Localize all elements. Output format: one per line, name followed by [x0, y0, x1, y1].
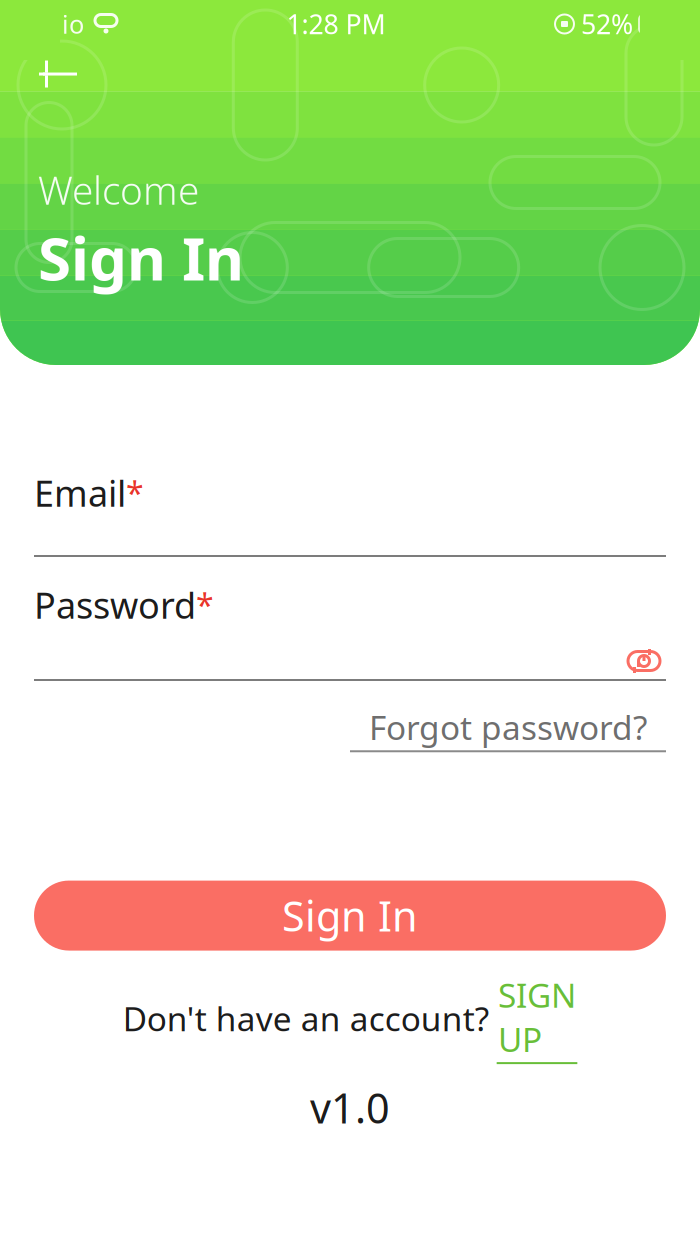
- staticText: *: [196, 584, 214, 626]
- staticText: SIGN UP: [498, 973, 576, 1061]
- staticText: Password: [34, 581, 196, 629]
- staticText: *: [126, 472, 144, 514]
- button[interactable]: SIGN UP: [489, 973, 577, 1064]
- staticText: 52%: [581, 6, 633, 42]
- button[interactable]: Forgot password?: [350, 695, 666, 752]
- button[interactable]: Show password: [622, 643, 666, 679]
- staticText: Sign In: [282, 888, 418, 943]
- staticText: v1.0: [310, 1080, 390, 1135]
- staticText: Don't have an account?: [123, 996, 489, 1040]
- staticText: 1:28 PM: [286, 6, 385, 42]
- staticText: Email: [34, 469, 126, 517]
- staticText: Jio: [55, 7, 84, 41]
- staticText: Welcome: [38, 164, 199, 215]
- staticText: Sign In: [38, 217, 244, 297]
- button[interactable]: Sign In: [34, 881, 666, 951]
- button[interactable]: Back: [22, 48, 86, 100]
- staticText: Forgot password?: [369, 705, 647, 749]
